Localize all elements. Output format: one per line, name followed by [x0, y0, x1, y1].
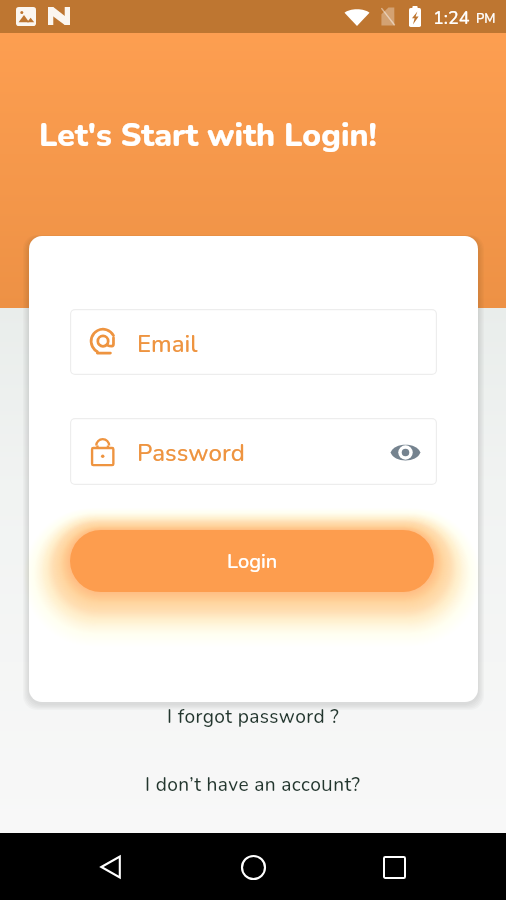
staticText: Password [137, 437, 245, 470]
button[interactable]: Recent apps [365, 838, 423, 896]
button[interactable]: Back [83, 838, 141, 896]
staticText: PM [476, 10, 496, 28]
staticText: Email [137, 328, 198, 361]
staticText: I don’t have an account? [145, 771, 361, 798]
staticText: Let's Start with Login! [39, 114, 377, 158]
button[interactable]: I forgot password ? [0, 699, 506, 735]
button[interactable]: Home [224, 838, 282, 896]
staticText: 1:24 [433, 6, 470, 31]
button[interactable]: Password [70, 418, 437, 485]
button[interactable]: Show password [379, 426, 431, 478]
button[interactable]: Email [70, 309, 437, 375]
button[interactable]: Login [70, 530, 434, 592]
staticText: I forgot password ? [167, 704, 340, 730]
staticText: Login [227, 548, 278, 575]
button[interactable]: I don’t have an account? [0, 766, 506, 802]
